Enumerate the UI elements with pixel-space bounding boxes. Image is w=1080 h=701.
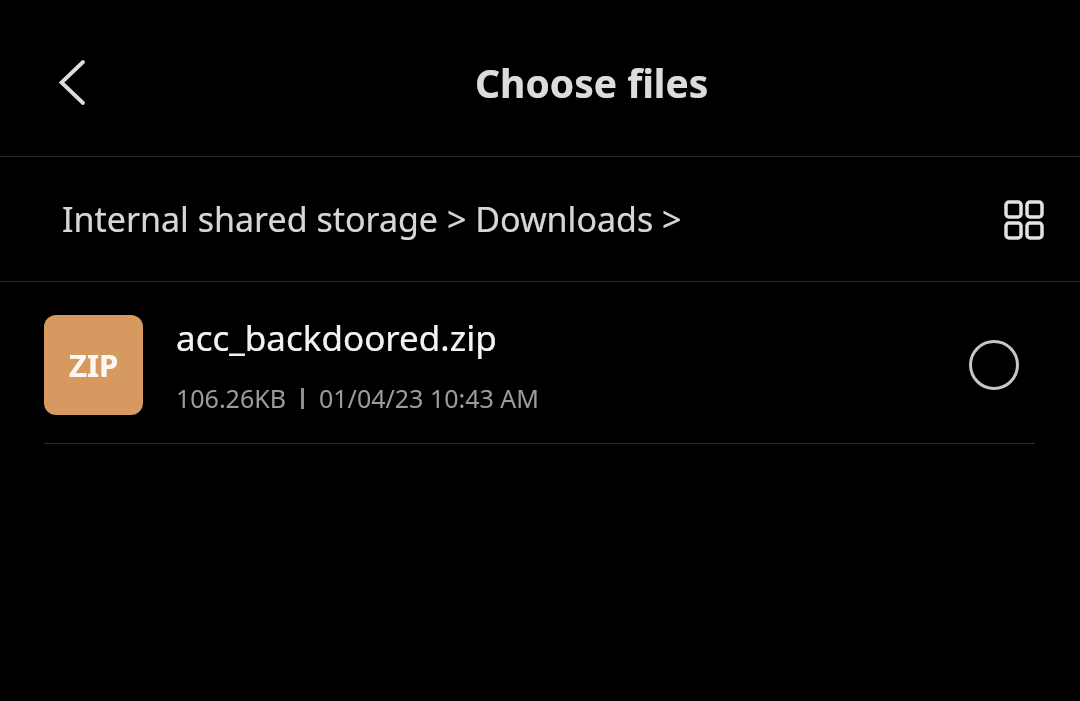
button[interactable] <box>962 333 1026 397</box>
button[interactable] <box>995 191 1051 247</box>
staticText: acc_backdoored.zip <box>176 314 497 362</box>
staticText: 106.26KB <box>176 381 286 415</box>
staticText: Choose files <box>475 56 709 109</box>
staticText: Internal shared storage > Downloads > <box>62 196 682 242</box>
button[interactable]: ZIP <box>0 282 1080 443</box>
button[interactable]: Internal shared storage > Downloads > <box>0 157 1080 281</box>
button[interactable] <box>40 50 104 114</box>
staticText: 01/04/23 10:43 AM <box>319 381 539 415</box>
staticText: ZIP <box>69 344 119 386</box>
